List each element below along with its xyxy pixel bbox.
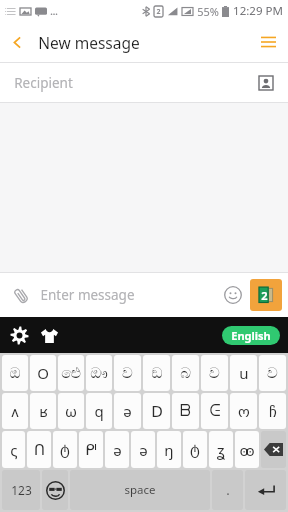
staticText: ව xyxy=(267,366,278,381)
staticText: ə xyxy=(123,401,132,421)
button[interactable]: ə xyxy=(114,393,141,429)
staticText: ŋ xyxy=(164,440,174,460)
staticText: 2 xyxy=(156,7,161,17)
staticText: Enter message xyxy=(40,286,135,304)
button[interactable]: බ xyxy=(172,355,199,391)
staticText: ʓ xyxy=(217,440,225,460)
staticText: 12:29 PM xyxy=(233,3,283,19)
staticText: ඖ xyxy=(90,366,108,381)
button[interactable]: ව xyxy=(201,355,228,391)
button[interactable]: ව xyxy=(259,355,286,391)
button[interactable]: ჩ xyxy=(259,393,286,429)
button[interactable]: Emoji keyboard xyxy=(42,470,68,510)
staticText: . xyxy=(226,481,230,499)
button[interactable]: ო xyxy=(230,393,257,429)
button[interactable]: 123 xyxy=(2,470,40,510)
staticText: q xyxy=(94,401,104,421)
button[interactable]: space xyxy=(70,470,210,510)
button[interactable]: ᑎ xyxy=(27,431,51,468)
staticText: ᗞ xyxy=(151,403,163,420)
button[interactable]: Enter xyxy=(245,470,286,510)
button[interactable]: ᗷ xyxy=(172,393,199,429)
button[interactable]: Keyboard theme xyxy=(34,320,64,350)
staticText: ᴧ xyxy=(11,401,19,421)
staticText: 2 xyxy=(261,288,268,303)
staticText: ə xyxy=(113,440,122,460)
button[interactable]: O xyxy=(30,355,56,391)
button[interactable]: ტ xyxy=(53,431,77,468)
button[interactable]: ω xyxy=(58,393,84,429)
staticText: ᕮ xyxy=(209,404,221,419)
button[interactable]: ꙭ xyxy=(235,431,259,468)
staticText: ᒆ xyxy=(85,441,97,458)
staticText: ə xyxy=(139,440,148,460)
staticText: ව xyxy=(209,366,220,381)
staticText: ඔ xyxy=(9,366,21,381)
button[interactable]: ව xyxy=(114,355,141,391)
button[interactable]: ඞ xyxy=(143,355,170,391)
button[interactable]: ᕮ xyxy=(201,393,228,429)
button[interactable]: ᴧ xyxy=(2,393,28,429)
button[interactable]: ඖ xyxy=(86,355,112,391)
button[interactable]: u xyxy=(230,355,257,391)
staticText: ᑎ xyxy=(34,441,45,458)
staticText: ඞ xyxy=(151,366,163,381)
staticText: Recipient xyxy=(14,74,73,92)
button[interactable]: . xyxy=(212,470,243,510)
button[interactable]: Backspace xyxy=(261,431,286,468)
staticText: ო xyxy=(238,403,250,420)
button[interactable]: Add recipient from contacts xyxy=(250,67,282,99)
staticText: ᗷ xyxy=(180,404,191,419)
staticText: 55% xyxy=(197,4,219,19)
staticText: 123 xyxy=(11,482,32,498)
button[interactable]: English xyxy=(222,326,280,345)
button[interactable]: ʁ xyxy=(30,393,56,429)
button[interactable]: q xyxy=(86,393,112,429)
staticText: ς xyxy=(10,440,18,460)
staticText: ჩ xyxy=(269,403,277,420)
staticText: space xyxy=(124,482,156,498)
staticText: ტ xyxy=(190,441,200,458)
button[interactable]: Attach xyxy=(6,280,36,310)
staticText: ව xyxy=(122,366,133,381)
staticText: ... xyxy=(50,5,58,17)
button[interactable]: ŋ xyxy=(157,431,181,468)
button[interactable]: ტ xyxy=(183,431,207,468)
staticText: ω xyxy=(65,401,77,421)
button[interactable]: ς xyxy=(2,431,25,468)
staticText: බ xyxy=(180,366,191,381)
button[interactable]: ඔ xyxy=(2,355,28,391)
button[interactable]: Emoji xyxy=(218,280,248,310)
button[interactable]: Send message, 2 pages xyxy=(250,279,282,311)
staticText: O xyxy=(37,363,49,383)
staticText: ტ xyxy=(60,441,70,458)
staticText: New message xyxy=(38,32,140,53)
staticText: u xyxy=(239,363,249,383)
button[interactable]: ʓ xyxy=(209,431,233,468)
button[interactable]: Keyboard settings xyxy=(4,320,34,350)
button[interactable]: Back xyxy=(0,25,34,59)
button[interactable]: ᗞ xyxy=(143,393,170,429)
staticText: English xyxy=(231,328,271,343)
staticText: ඓ xyxy=(61,366,81,381)
button[interactable]: ə xyxy=(131,431,155,468)
button[interactable]: ඓ xyxy=(58,355,84,391)
button[interactable]: Menu xyxy=(248,22,288,62)
button[interactable]: ᒆ xyxy=(79,431,103,468)
staticText: ꙭ xyxy=(239,440,255,460)
button[interactable]: ə xyxy=(105,431,129,468)
staticText: ʁ xyxy=(39,401,48,421)
